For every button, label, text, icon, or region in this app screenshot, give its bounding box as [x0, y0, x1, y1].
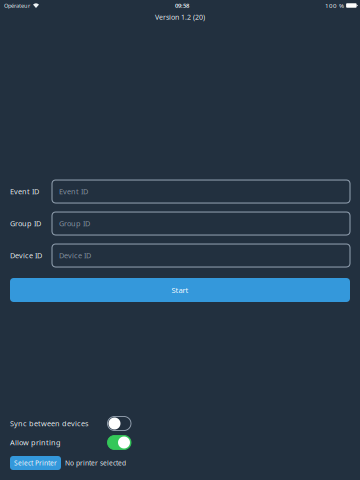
staticText: Select Printer	[14, 458, 57, 468]
staticText: Group ID	[10, 218, 41, 228]
button[interactable]: Start	[10, 278, 350, 302]
staticText: Device ID	[59, 250, 91, 260]
staticText: No printer selected	[65, 458, 126, 468]
staticText: Sync between devices	[10, 418, 89, 428]
button[interactable]: Event ID	[52, 180, 350, 203]
staticText: Opérateur	[4, 2, 30, 9]
staticText: Event ID	[59, 186, 88, 196]
button[interactable]: Device ID	[52, 244, 350, 267]
staticText: Allow printing	[10, 437, 61, 447]
button[interactable]: Group ID	[52, 212, 350, 235]
staticText: Event ID	[10, 186, 39, 196]
button[interactable]: Allow printing	[10, 433, 131, 452]
button[interactable]: Select Printer	[10, 456, 61, 470]
staticText: 09:58	[175, 1, 189, 10]
staticText: Version 1.2 (20)	[155, 12, 205, 22]
staticText: Start	[171, 285, 188, 295]
staticText: Group ID	[59, 218, 90, 228]
staticText: 100 %	[325, 1, 344, 10]
button[interactable]: Sync between devices	[10, 414, 131, 433]
staticText: Device ID	[10, 250, 42, 260]
